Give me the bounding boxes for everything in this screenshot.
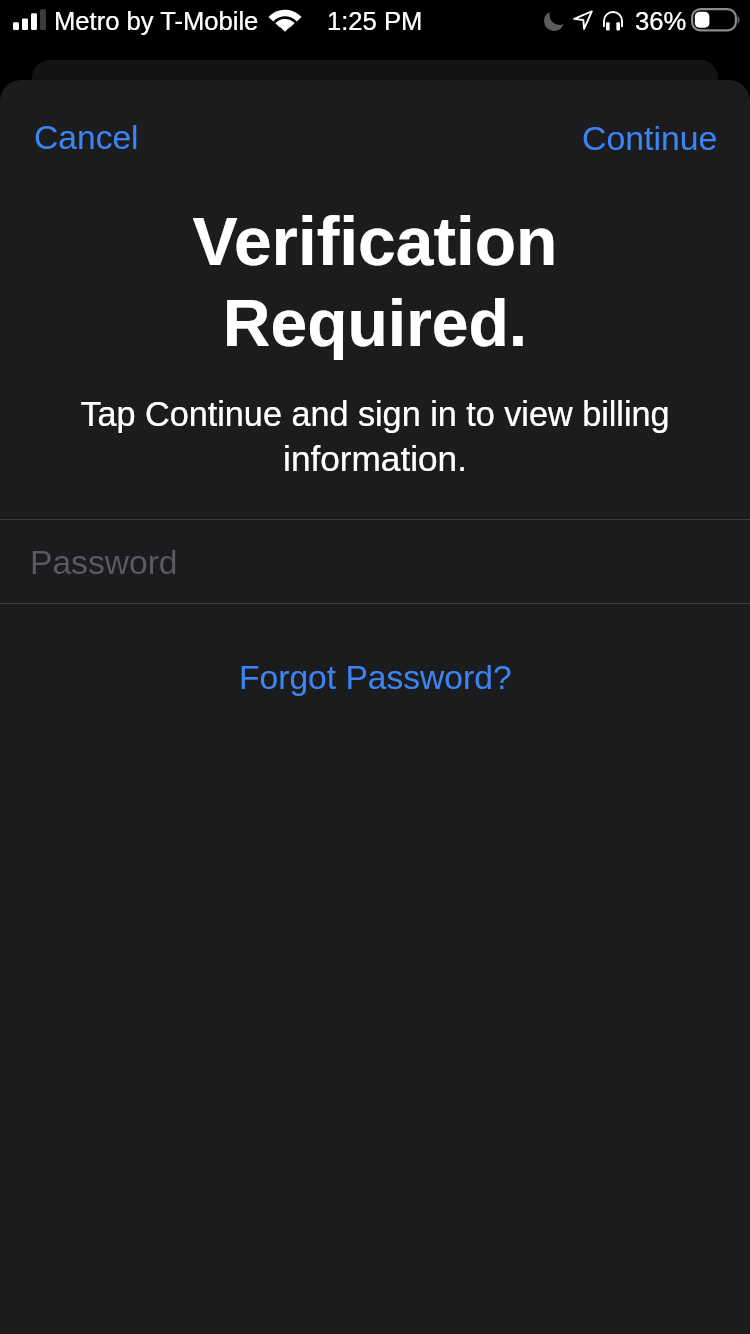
staticText: Forgot Password? xyxy=(239,659,512,697)
staticText: Verification xyxy=(0,204,750,280)
staticText: information. xyxy=(0,439,750,478)
staticText: Cancel xyxy=(34,119,139,157)
staticText: Metro by T-Mobile xyxy=(54,7,259,36)
staticText: Required. xyxy=(0,286,750,360)
other: Battery 36 percent xyxy=(691,7,741,33)
other: Cellular signal strength xyxy=(13,9,46,30)
other: Headphones connected xyxy=(603,11,623,31)
staticText: Continue xyxy=(582,119,718,157)
other: Wi-Fi xyxy=(270,9,300,31)
staticText: Password xyxy=(30,544,178,582)
other: Do Not Disturb xyxy=(544,11,564,31)
staticText: Tap Continue and sign in to view billing xyxy=(0,395,750,433)
button[interactable]: Password xyxy=(0,520,750,603)
button[interactable]: Cancel xyxy=(18,103,155,173)
button[interactable]: Continue xyxy=(566,103,734,173)
staticText: 1:25 PM xyxy=(327,7,423,36)
other: Location services active xyxy=(574,11,592,29)
staticText: 36% xyxy=(635,7,687,36)
button[interactable]: Forgot Password? xyxy=(221,643,530,713)
